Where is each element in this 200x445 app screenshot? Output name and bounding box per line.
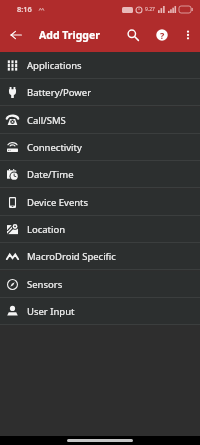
button[interactable]: Help [148, 21, 176, 49]
staticText: Device Events [27, 196, 89, 209]
button[interactable]: Location [0, 216, 200, 243]
button[interactable]: Applications [0, 52, 200, 79]
button[interactable]: User Input [0, 298, 200, 325]
button[interactable]: Date/Time [0, 161, 200, 188]
button[interactable]: MacroDroid Specific [0, 243, 200, 270]
button[interactable]: Back [0, 19, 32, 51]
staticText: ? [160, 29, 165, 41]
button[interactable]: Call/SMS [0, 107, 200, 134]
staticText: Applications [27, 59, 82, 72]
button[interactable]: Search [118, 20, 148, 50]
staticText: Call/SMS [27, 114, 66, 127]
staticText: Date/Time [27, 168, 74, 181]
staticText: Connectivity [27, 141, 82, 154]
button[interactable]: Sensors [0, 271, 200, 298]
staticText: Battery/Power [27, 86, 92, 99]
staticText: 8:16 [17, 4, 32, 14]
staticText: User Input [27, 305, 75, 318]
button[interactable]: Battery/Power [0, 79, 200, 106]
staticText: MacroDroid Specific [27, 250, 116, 263]
button[interactable]: Device Events [0, 189, 200, 216]
staticText: 9.27 [145, 6, 155, 13]
staticText: Location [27, 223, 66, 236]
staticText: Add Trigger [39, 28, 100, 42]
button[interactable]: Connectivity [0, 134, 200, 161]
button[interactable]: More options [176, 23, 200, 47]
staticText: Sensors [27, 278, 63, 291]
